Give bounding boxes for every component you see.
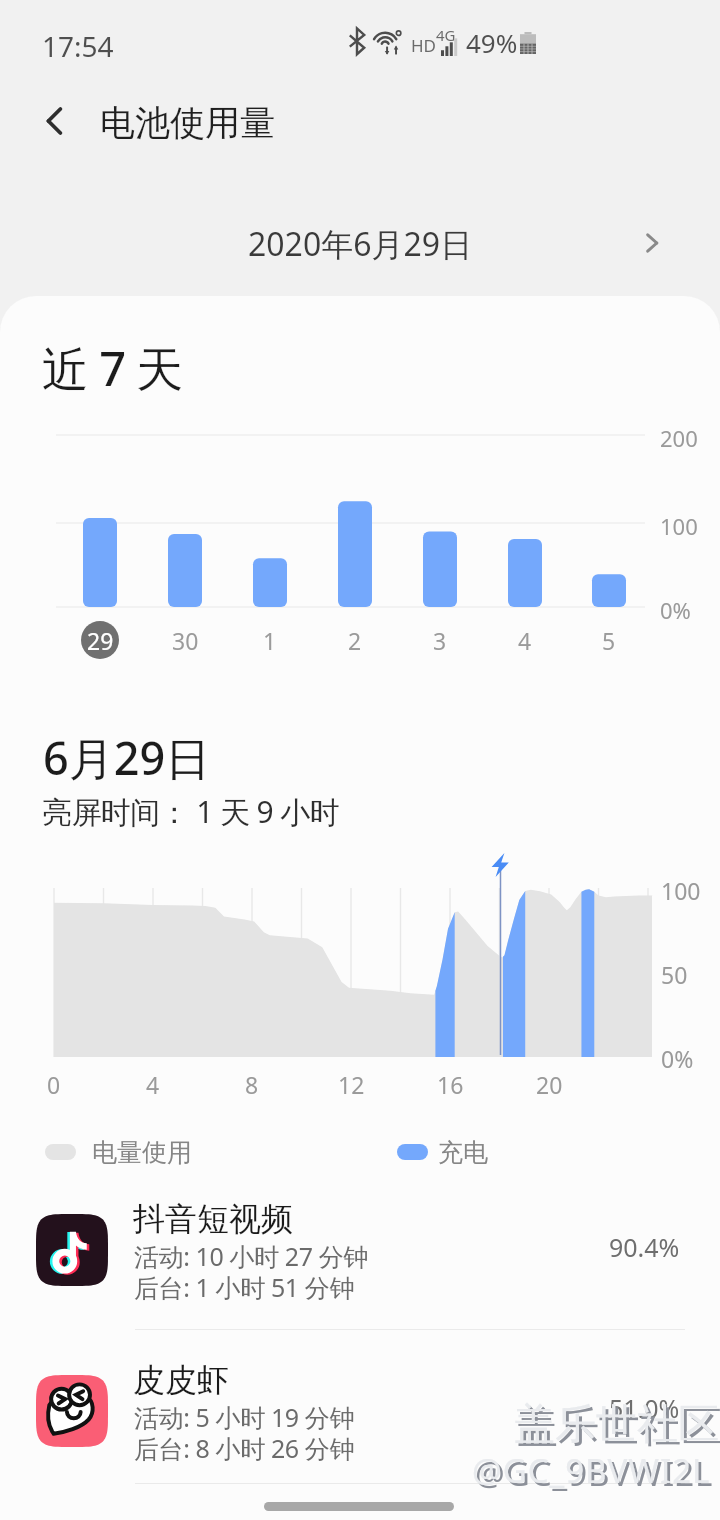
button[interactable]: Back — [10, 76, 100, 166]
staticText: 20 — [536, 1069, 563, 1100]
staticText: 后台: 1 小时 51 分钟 — [134, 1270, 355, 1304]
staticText: 0% — [661, 1043, 694, 1074]
staticText: 3 — [433, 625, 447, 656]
staticText: 12 — [338, 1069, 365, 1100]
staticText: 后台: 8 小时 26 分钟 — [134, 1431, 355, 1465]
staticText: 电池使用量 — [100, 101, 275, 145]
staticText: 盖乐世社区 — [514, 1399, 719, 1451]
staticText: 16 — [437, 1069, 464, 1100]
staticText: @GC_9BVWI2L — [475, 1451, 714, 1496]
staticText: 100 — [661, 875, 701, 906]
staticText: 51.0% — [609, 1391, 680, 1425]
staticText: 100 — [660, 511, 698, 541]
staticText: 4 — [518, 625, 532, 656]
staticText: 2020年6月29日 — [248, 222, 473, 266]
staticText: 4G — [436, 25, 456, 45]
staticText: 50 — [661, 959, 688, 990]
staticText: 29 — [87, 625, 114, 656]
button[interactable]: 皮皮虾 — [0, 1365, 720, 1505]
staticText: 5 — [602, 625, 616, 656]
staticText: 抖音短视频 — [133, 1199, 293, 1239]
button[interactable]: 2020年6月29日 — [248, 222, 473, 266]
staticText: 6月29日 — [43, 727, 211, 788]
button[interactable]: 抖音短视频 — [0, 1204, 720, 1344]
staticText: 30 — [172, 625, 199, 656]
staticText: 近 7 天 — [42, 336, 183, 400]
staticText: 皮皮虾 — [133, 1360, 229, 1400]
staticText: 49% — [466, 25, 518, 60]
staticText: 盖乐世社区 — [517, 1402, 720, 1454]
staticText: 90.4% — [609, 1230, 680, 1264]
staticText: 亮屏时间： 1 天 9 小时 — [42, 791, 340, 832]
staticText: @GC_9BVWI2L — [472, 1448, 711, 1493]
staticText: 活动: 5 小时 19 分钟 — [134, 1400, 355, 1434]
staticText: 2 — [348, 625, 362, 656]
staticText: 4 — [146, 1069, 160, 1100]
staticText: 200 — [660, 423, 698, 453]
staticText: 电量使用 — [92, 1137, 192, 1168]
staticText: 活动: 10 小时 27 分钟 — [134, 1239, 368, 1273]
staticText: 0 — [47, 1069, 61, 1100]
staticText: 1 — [263, 625, 277, 656]
staticText: 17:54 — [42, 27, 114, 65]
staticText: HD — [411, 34, 437, 57]
staticText: 0% — [660, 595, 691, 625]
staticText: 8 — [245, 1069, 259, 1100]
staticText: 充电 — [438, 1137, 488, 1168]
button[interactable]: Next day — [628, 219, 676, 267]
